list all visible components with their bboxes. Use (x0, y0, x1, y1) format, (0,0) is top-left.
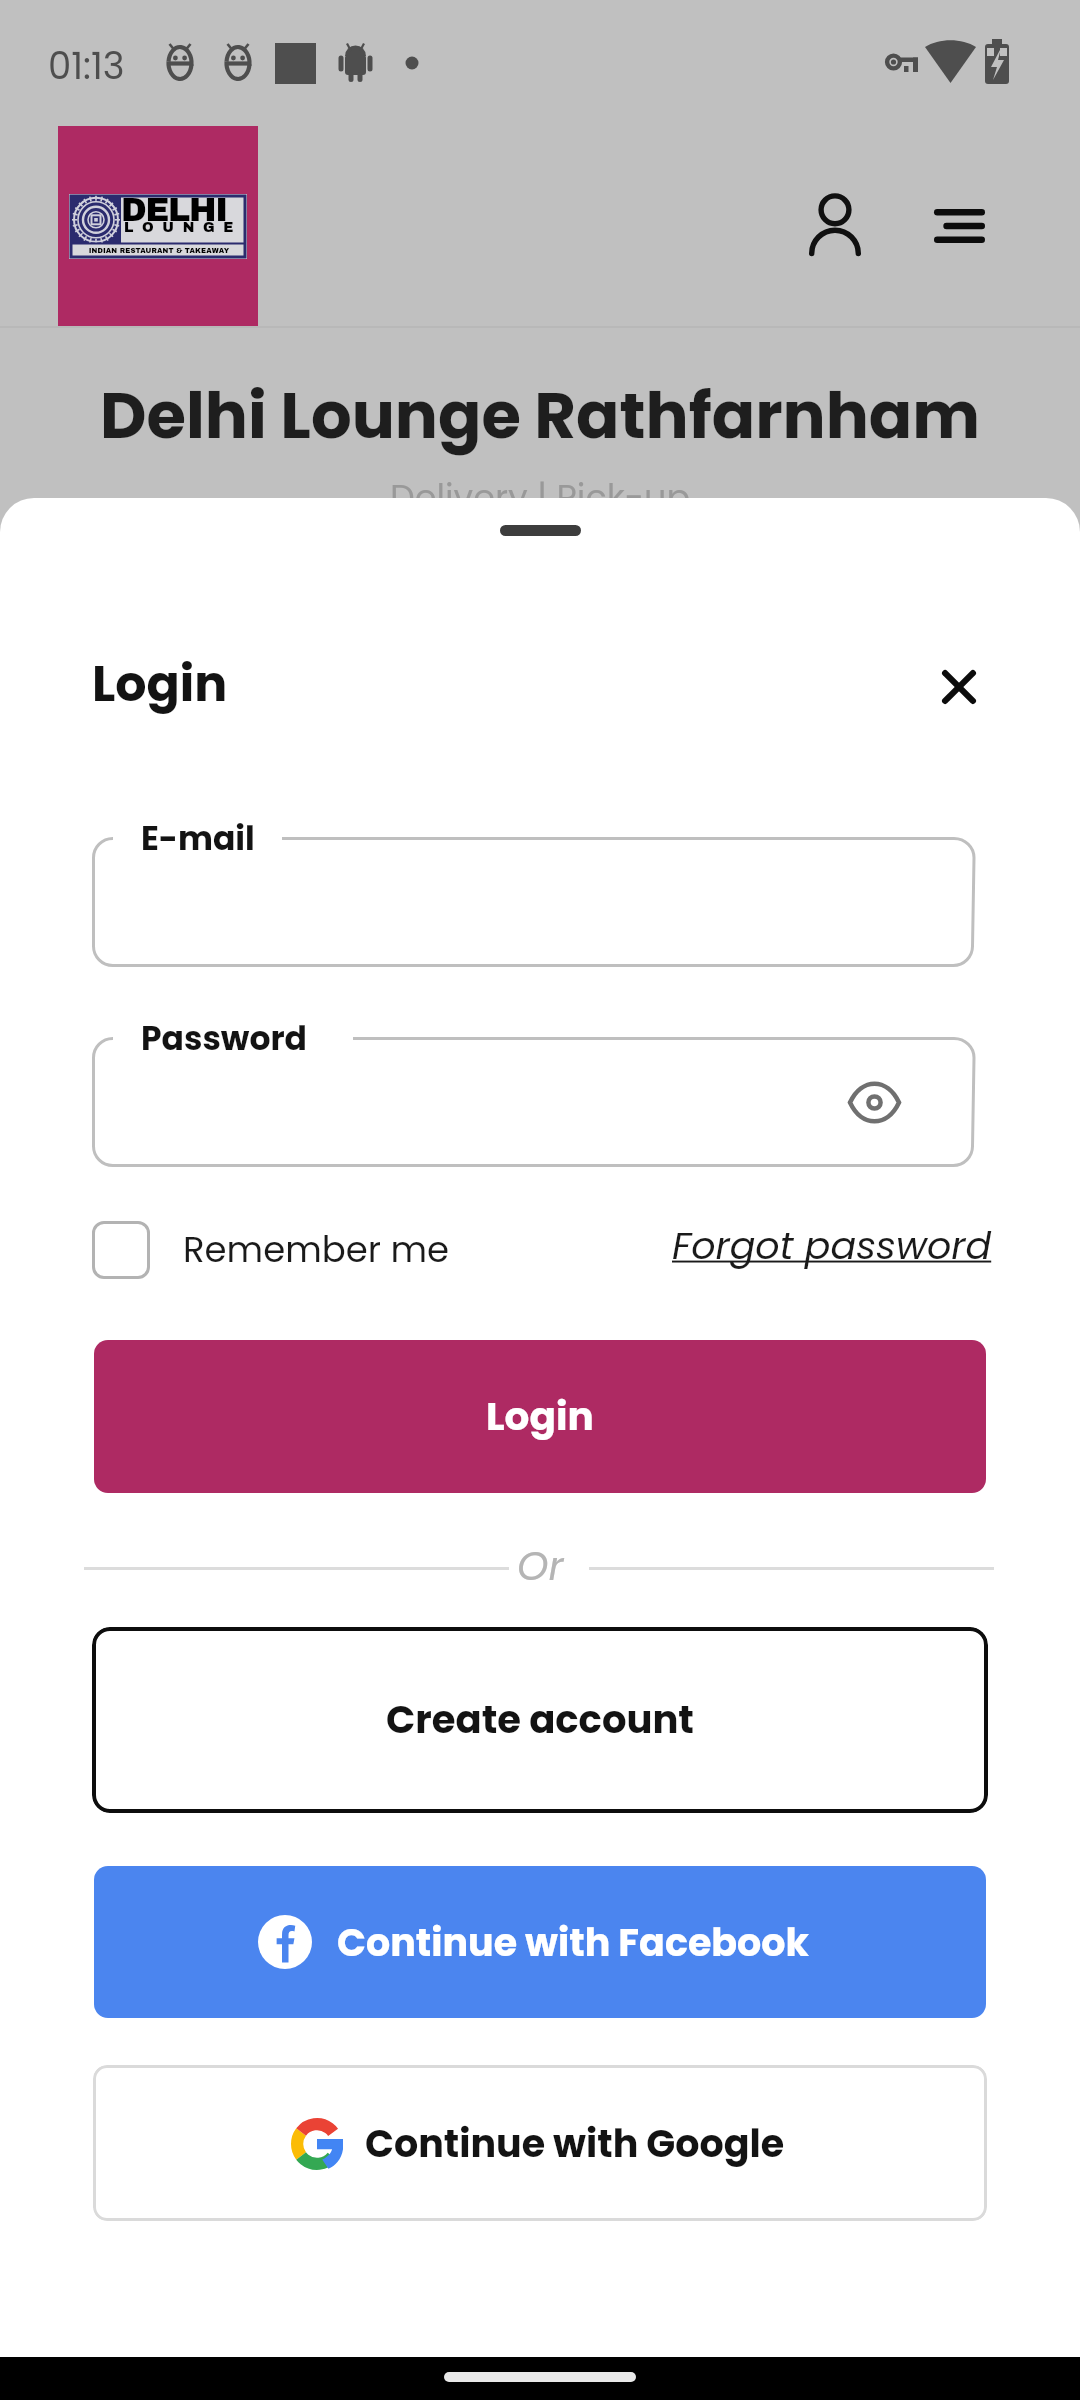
staticText: Login (92, 650, 228, 719)
button[interactable]: Close (912, 640, 1006, 734)
staticText: INDIAN RESTAURANT & TAKEAWAY (73, 247, 245, 255)
staticText: L O U N G E (124, 220, 236, 235)
button[interactable]: Menu (912, 178, 1007, 273)
staticText: Delivery | Pick-up (0, 473, 1080, 522)
staticText: E-mail (141, 815, 255, 861)
button[interactable]: Forgot password (672, 1219, 992, 1272)
staticText: Remember me (183, 1225, 450, 1275)
staticText: Create account (386, 1693, 694, 1747)
staticText: Delhi Lounge Rathfarnham (0, 371, 1080, 461)
button[interactable]: Password (92, 1037, 974, 1167)
staticText: Or (517, 1538, 564, 1594)
button[interactable]: Create account (92, 1627, 988, 1813)
button[interactable]: Continue with Facebook (94, 1866, 986, 2018)
button[interactable]: Remember me (92, 1221, 450, 1279)
staticText: 01:13 (48, 40, 125, 92)
staticText: Continue with Facebook (337, 1916, 809, 1969)
staticText: Continue with Google (365, 2117, 785, 2170)
staticText: DELHI (121, 192, 227, 228)
button[interactable]: Account (788, 178, 882, 272)
button[interactable]: Show password (838, 1066, 910, 1138)
button[interactable]: E-mail (92, 837, 974, 967)
staticText: Login (486, 1389, 594, 1444)
button[interactable]: Login (94, 1340, 986, 1493)
staticText: Forgot password (672, 1219, 992, 1272)
button[interactable]: Continue with Google (93, 2065, 987, 2221)
staticText: Password (141, 1015, 307, 1061)
